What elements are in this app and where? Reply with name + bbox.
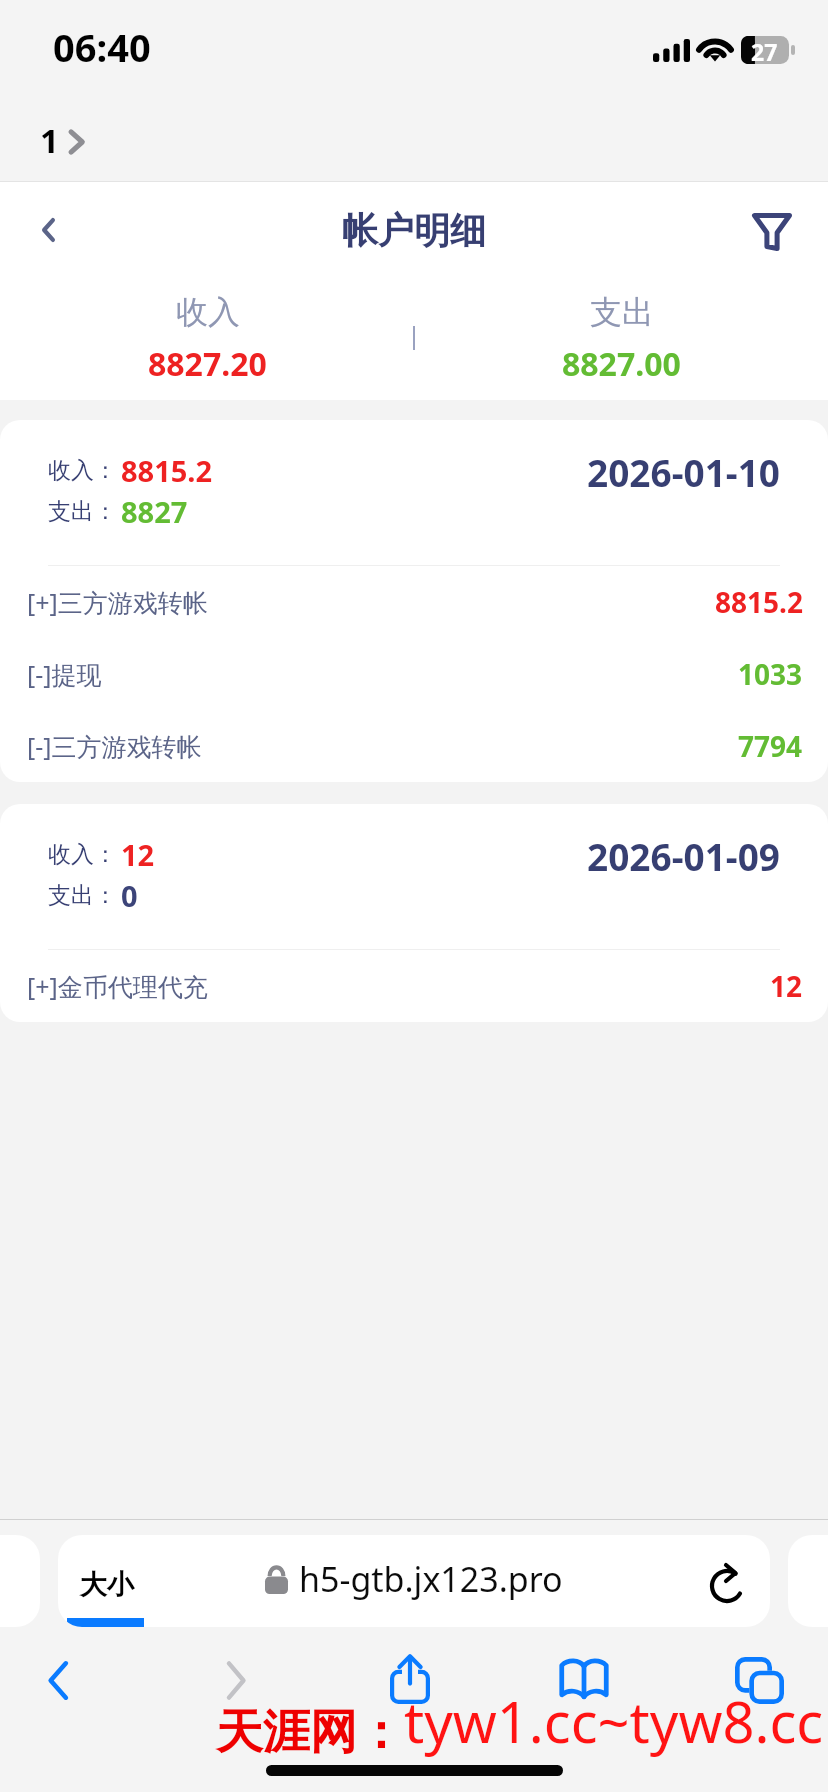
staticText: 8815.2 — [715, 583, 803, 621]
staticText: 1 — [40, 118, 59, 163]
staticText: 8815.2 — [121, 451, 213, 490]
staticText: 8827.20 — [148, 342, 267, 386]
staticText: 12 — [121, 835, 155, 874]
staticText: 7794 — [738, 727, 803, 765]
staticText: 支出： — [48, 881, 117, 910]
staticText: 27 — [751, 36, 778, 64]
staticText: 收入 — [176, 292, 240, 332]
button[interactable]: 支出 — [414, 278, 828, 400]
staticText: 8827.00 — [562, 342, 681, 386]
button[interactable]: [-]三方游戏转帐 — [0, 710, 828, 782]
button[interactable]: Filter — [742, 200, 802, 260]
button[interactable]: 收入： — [0, 420, 828, 782]
staticText: 06:40 — [53, 21, 151, 73]
staticText: [+]金币代理代充 — [27, 969, 208, 1003]
button[interactable]: Bookmarks — [549, 1643, 619, 1713]
staticText: 12 — [770, 967, 803, 1005]
button[interactable]: 1 — [36, 112, 89, 169]
staticText: h5-gtb.jx123.pro — [299, 1556, 563, 1602]
staticText: 天涯网： — [216, 1703, 404, 1762]
button[interactable]: 收入： — [0, 804, 828, 1022]
button[interactable]: 收入 — [0, 278, 414, 400]
staticText: [+]三方游戏转帐 — [27, 585, 208, 619]
button[interactable]: 大小 — [58, 1535, 770, 1627]
button[interactable]: Tabs — [724, 1645, 794, 1715]
staticText: 帐户明细 — [342, 208, 486, 253]
button[interactable]: Share — [375, 1643, 445, 1713]
button[interactable]: Back — [23, 1645, 93, 1715]
staticText: 0 — [121, 876, 138, 915]
staticText: [-]提现 — [27, 657, 102, 691]
staticText: 支出： — [48, 497, 117, 526]
button[interactable]: Back — [19, 201, 77, 259]
staticText: 收入： — [48, 456, 117, 485]
staticText: 收入： — [48, 840, 117, 869]
staticText: 1033 — [738, 655, 803, 693]
staticText: 大小 — [80, 1568, 134, 1602]
button[interactable]: [+]三方游戏转帐 — [0, 566, 828, 638]
staticText: 8827 — [121, 492, 188, 531]
button[interactable]: Reload — [700, 1553, 756, 1609]
button[interactable]: Forward — [201, 1645, 271, 1715]
staticText: 2026-01-10 — [587, 447, 780, 497]
staticText: 2026-01-09 — [587, 831, 780, 881]
staticText: [-]三方游戏转帐 — [27, 729, 202, 763]
button[interactable]: [-]提现 — [0, 638, 828, 710]
button[interactable]: [+]金币代理代充 — [0, 950, 828, 1022]
staticText: 支出 — [590, 292, 654, 332]
staticText: tyw1.cc~tyw8.cc — [404, 1683, 824, 1759]
